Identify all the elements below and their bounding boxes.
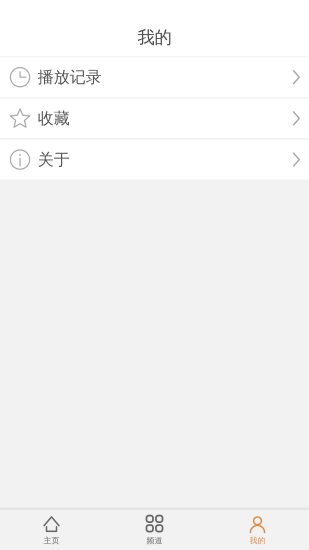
button[interactable]: 我的 [206,510,309,550]
staticText: 我的 [137,27,171,48]
staticText: 频道 [146,536,162,545]
staticText: 收藏 [38,109,70,128]
button[interactable]: 主页 [0,510,103,550]
button[interactable]: 频道 [103,510,206,550]
button[interactable]: 播放记录 [0,57,309,97]
button[interactable]: 收藏 [0,99,309,138]
staticText: 关于 [38,150,70,169]
staticText: 主页 [43,536,59,545]
staticText: 我的 [249,536,265,545]
button[interactable]: 关于 [0,140,309,179]
staticText: 播放记录 [38,67,102,87]
